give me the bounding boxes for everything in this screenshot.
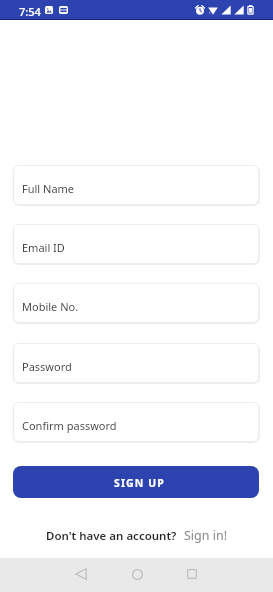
button[interactable]: Email ID [13,224,259,264]
staticText: Mobile No. [22,299,79,314]
staticText: SIGN UP [114,476,165,490]
button[interactable]: Sign in! [184,527,228,544]
staticText: Sign in! [184,527,228,544]
staticText: 7:54 [19,4,41,19]
button[interactable]: Back [64,557,98,591]
button[interactable]: Password [13,343,259,383]
staticText: Full Name [22,181,75,196]
button[interactable]: Confirm password [13,402,259,442]
staticText: Don't have an account? [46,528,177,544]
button[interactable]: Full Name [13,165,259,205]
button[interactable]: SIGN UP [13,466,259,498]
staticText: Email ID [22,240,65,255]
button[interactable]: Mobile No. [13,283,259,323]
button[interactable]: Recent apps [175,557,209,591]
button[interactable]: Home [120,557,154,591]
staticText: Password [22,359,72,374]
staticText: Confirm password [22,418,117,433]
